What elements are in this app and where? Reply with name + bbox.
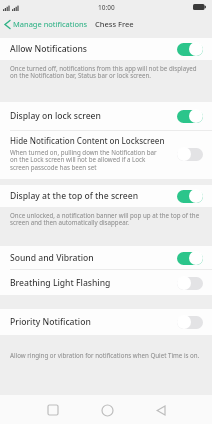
staticText: Sound and Vibration xyxy=(10,252,94,264)
button[interactable]: Allow Notifications xyxy=(0,38,212,60)
staticText: Hide Notification Content on Lockscreen xyxy=(10,135,165,146)
staticText: When turned on, pulling down the Notific… xyxy=(10,148,157,172)
staticText: Once turned off, notifications from this… xyxy=(10,64,197,80)
button[interactable]: Hide Notification Content on Lockscreen xyxy=(0,131,212,179)
staticText: 10:00 xyxy=(98,3,115,12)
button[interactable] xyxy=(177,42,203,56)
staticText: Breathing Light Flashing xyxy=(10,277,111,289)
button[interactable] xyxy=(177,276,203,290)
staticText: Allow Notifications xyxy=(10,43,87,55)
button[interactable]: Priority Notification xyxy=(0,309,212,335)
button[interactable] xyxy=(177,147,203,161)
staticText: Manage notifications xyxy=(13,19,88,29)
button[interactable]: Display on lock screen xyxy=(0,102,212,130)
button[interactable] xyxy=(177,315,203,329)
button[interactable] xyxy=(177,189,203,203)
button[interactable] xyxy=(96,399,118,421)
staticText: Once unlocked, a notification banner wil… xyxy=(10,211,200,227)
button[interactable]: Display at the top of the screen xyxy=(0,185,212,207)
button[interactable]: Breathing Light Flashing xyxy=(0,270,212,295)
staticText: Display at the top of the screen xyxy=(10,190,139,202)
staticText: Priority Notification xyxy=(10,316,91,328)
staticText: Chess Free xyxy=(95,19,134,29)
button[interactable]: Manage notifications xyxy=(4,19,88,29)
button[interactable]: Sound and Vibration xyxy=(0,246,212,269)
staticText: Display on lock screen xyxy=(10,110,101,122)
button[interactable] xyxy=(42,399,64,421)
button[interactable] xyxy=(177,109,203,123)
button[interactable] xyxy=(150,399,172,421)
staticText: Allow ringing or vibration for notificat… xyxy=(10,351,200,359)
button[interactable] xyxy=(177,251,203,265)
